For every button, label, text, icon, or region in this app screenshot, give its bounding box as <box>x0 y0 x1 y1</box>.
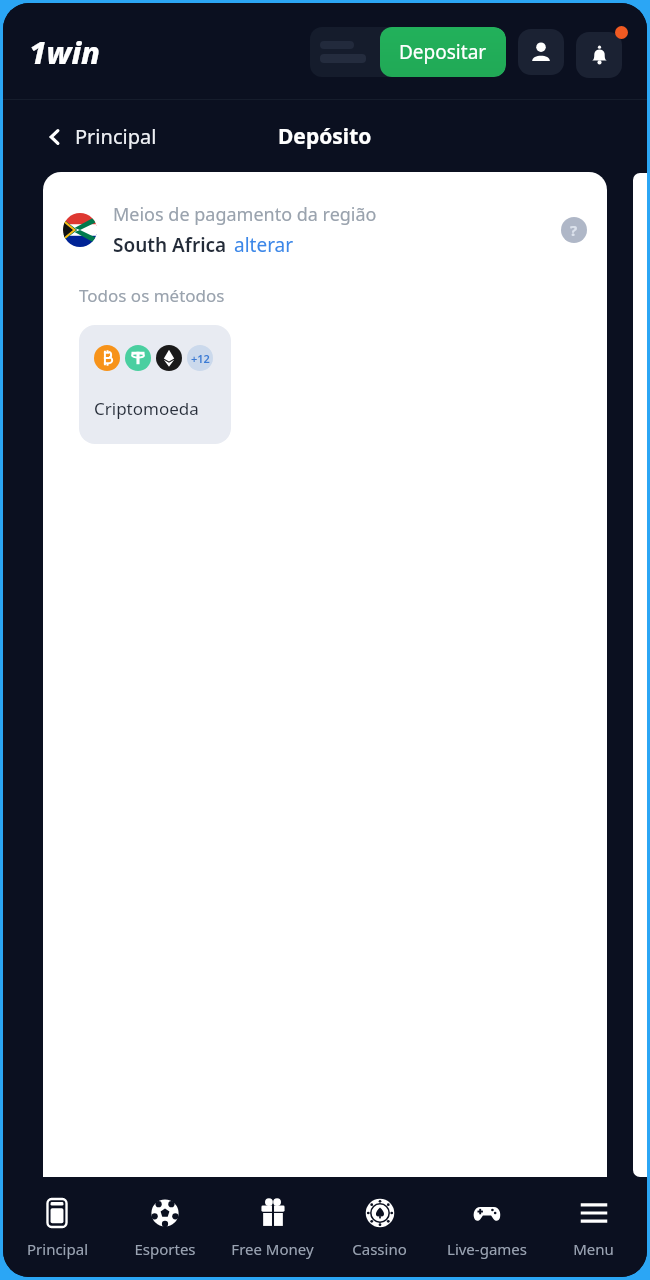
staticText: Criptomoeda <box>94 397 199 420</box>
button[interactable]: alterar <box>234 232 294 258</box>
staticText: Todos os métodos <box>79 284 225 307</box>
button[interactable]: +12 <box>79 325 231 444</box>
staticText: +12 <box>191 351 210 366</box>
button[interactable]: Principal <box>41 117 163 156</box>
button[interactable]: Notifications <box>576 32 622 78</box>
staticText: Principal <box>75 123 157 150</box>
button[interactable]: 1win home <box>25 27 105 77</box>
button[interactable]: Esportes <box>111 1177 219 1277</box>
button[interactable]: Free Money <box>219 1177 326 1277</box>
staticText: Live-games <box>447 1239 527 1259</box>
staticText: Principal <box>27 1239 88 1259</box>
staticText: Menu <box>573 1239 614 1259</box>
button[interactable]: Menu <box>540 1177 647 1277</box>
button[interactable]: Live-games <box>433 1177 540 1277</box>
button[interactable]: Principal <box>3 1177 111 1277</box>
staticText: Meios de pagamento da região <box>113 202 377 227</box>
staticText: Free Money <box>231 1239 314 1259</box>
staticText: ? <box>570 220 578 240</box>
button[interactable]: Profile <box>518 29 564 75</box>
staticText: South Africa <box>113 232 227 258</box>
staticText: Cassino <box>352 1239 407 1259</box>
staticText: Depósito <box>278 122 372 151</box>
button[interactable]: Meios de pagamento da região <box>43 198 607 262</box>
staticText: Esportes <box>134 1239 196 1259</box>
staticText: Depositar <box>399 39 487 65</box>
button[interactable]: Help <box>561 217 587 243</box>
button[interactable]: Depositar <box>310 27 506 77</box>
button[interactable]: Depositar <box>380 27 506 77</box>
staticText: 1win <box>29 31 101 73</box>
button[interactable]: Cassino <box>326 1177 433 1277</box>
